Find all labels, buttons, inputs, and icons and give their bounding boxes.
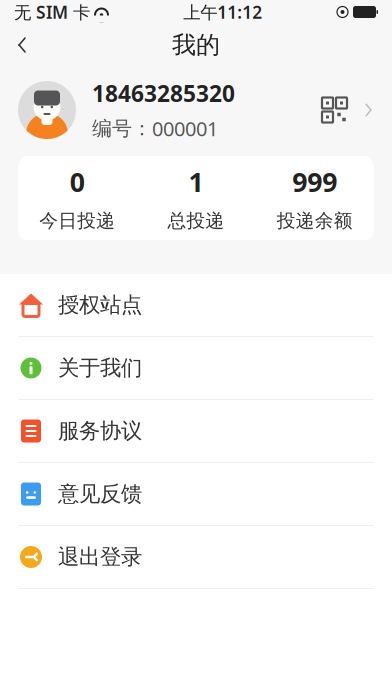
staticText: 我的 <box>172 30 220 60</box>
button[interactable]: 退出登录 <box>0 526 392 588</box>
staticText: 意见反馈 <box>58 481 142 507</box>
staticText: 上午11:12 <box>183 0 262 23</box>
staticText: 服务协议 <box>58 418 142 444</box>
button[interactable]: 授权站点 <box>0 274 392 336</box>
button[interactable]: 服务协议 <box>0 400 392 462</box>
staticText: 编号： <box>92 116 152 141</box>
staticText: 关于我们 <box>58 355 142 381</box>
staticText: 000001 <box>152 115 218 142</box>
staticText: 退出登录 <box>58 544 142 570</box>
staticText: 今日投递 <box>39 209 115 232</box>
staticText: 授权站点 <box>58 292 142 318</box>
button[interactable]: 意见反馈 <box>0 463 392 525</box>
staticText: 投递余额 <box>277 209 353 232</box>
button[interactable]: 关于我们 <box>0 337 392 399</box>
staticText: 总投递 <box>167 209 224 232</box>
button[interactable]: 返回 <box>0 23 44 67</box>
staticText: 无 SIM 卡 <box>14 0 90 23</box>
staticText: 999 <box>292 164 337 199</box>
staticText: 18463285320 <box>92 78 235 108</box>
button[interactable]: 18463285320 <box>0 66 392 154</box>
staticText: 1 <box>188 164 203 199</box>
staticText: 0 <box>70 164 85 199</box>
